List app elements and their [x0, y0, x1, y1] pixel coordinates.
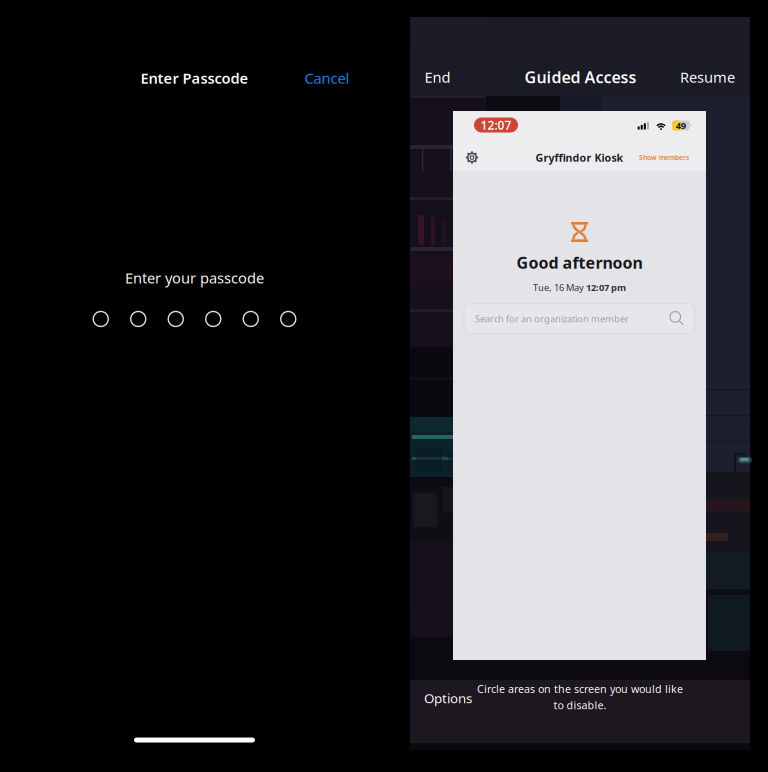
- staticText: Search for an organization member: [475, 312, 629, 325]
- staticText: Enter your passcode: [125, 268, 264, 287]
- button[interactable]: Cancel: [296, 62, 357, 94]
- staticText: Resume: [680, 67, 735, 87]
- staticText: End: [424, 67, 450, 87]
- staticText: Tue, 16 May 12:07 pm: [533, 281, 626, 294]
- staticText: 49: [676, 119, 686, 132]
- staticText: 12:07: [480, 117, 511, 133]
- staticText: Cancel: [304, 68, 349, 88]
- staticText: Good afternoon: [516, 252, 642, 273]
- button[interactable]: Resume: [670, 59, 745, 95]
- button[interactable]: End: [414, 59, 460, 95]
- button[interactable]: Settings: [460, 145, 484, 169]
- staticText: Circle areas on the screen you would lik…: [477, 682, 683, 696]
- staticText: Gryffindor Kiosk: [535, 150, 623, 165]
- button[interactable]: Show members: [635, 149, 693, 166]
- staticText: Guided Access: [524, 66, 636, 88]
- button[interactable]: Options: [416, 681, 480, 715]
- staticText: Show members: [639, 153, 689, 162]
- staticText: to disable.: [553, 698, 606, 712]
- staticText: Options: [424, 689, 472, 707]
- staticText: Enter Passcode: [140, 68, 248, 88]
